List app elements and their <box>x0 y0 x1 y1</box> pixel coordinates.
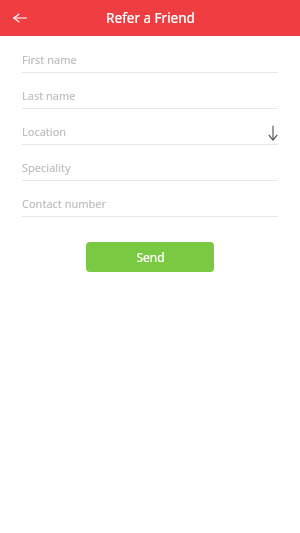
staticText: Contact number <box>22 196 107 211</box>
button[interactable]: Select location <box>268 125 278 141</box>
staticText: Last name <box>22 88 76 103</box>
staticText: Refer a Friend <box>106 9 195 27</box>
button[interactable]: Send <box>86 242 214 272</box>
button[interactable]: Speciality <box>22 155 278 181</box>
staticText: Location <box>22 124 67 139</box>
button[interactable]: Location <box>22 119 278 145</box>
staticText: First name <box>22 52 77 67</box>
button[interactable]: First name <box>22 47 278 73</box>
button[interactable]: Back <box>9 7 31 29</box>
button[interactable]: Contact number <box>22 191 278 217</box>
button[interactable]: Last name <box>22 83 278 109</box>
staticText: Send <box>136 249 165 265</box>
staticText: Speciality <box>22 160 71 175</box>
